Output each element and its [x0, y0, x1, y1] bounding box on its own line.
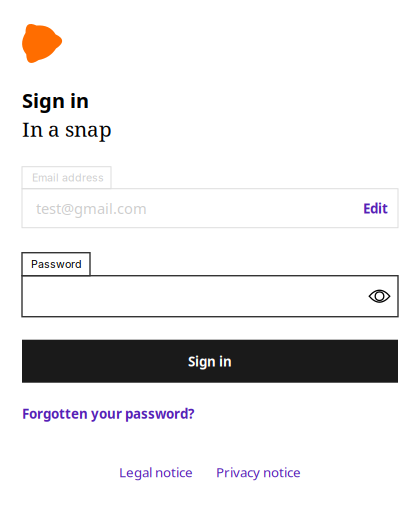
staticText: Privacy notice [216, 463, 301, 481]
staticText: Password [31, 258, 82, 271]
button[interactable]: Legal notice [119, 463, 193, 481]
staticText: Sign in [188, 352, 232, 370]
staticText: test@gmail.com [36, 198, 147, 218]
staticText: Edit [363, 199, 388, 217]
staticText: In a snap [22, 115, 112, 143]
staticText: Forgotten your password? [22, 405, 194, 422]
staticText: Sign in [22, 87, 89, 114]
button[interactable]: Forgotten your password? [0, 405, 194, 422]
button[interactable]: Sign in [22, 340, 398, 383]
button[interactable]: Edit [363, 199, 398, 217]
staticText: Legal notice [119, 463, 193, 481]
staticText: Email address [32, 171, 104, 184]
button[interactable]: Privacy notice [216, 463, 301, 481]
button[interactable]: Show password [368, 289, 398, 303]
